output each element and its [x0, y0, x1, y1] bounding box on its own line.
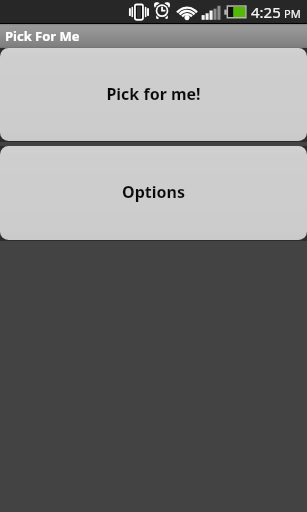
- staticText: Pick for me!: [106, 83, 201, 105]
- staticText: Options: [122, 181, 185, 203]
- button[interactable]: Pick for me!: [0, 48, 307, 141]
- staticText: 4:25: [251, 2, 281, 22]
- button[interactable]: Options: [0, 146, 307, 240]
- staticText: Pick For Me: [5, 27, 80, 45]
- staticText: PM: [284, 6, 301, 21]
